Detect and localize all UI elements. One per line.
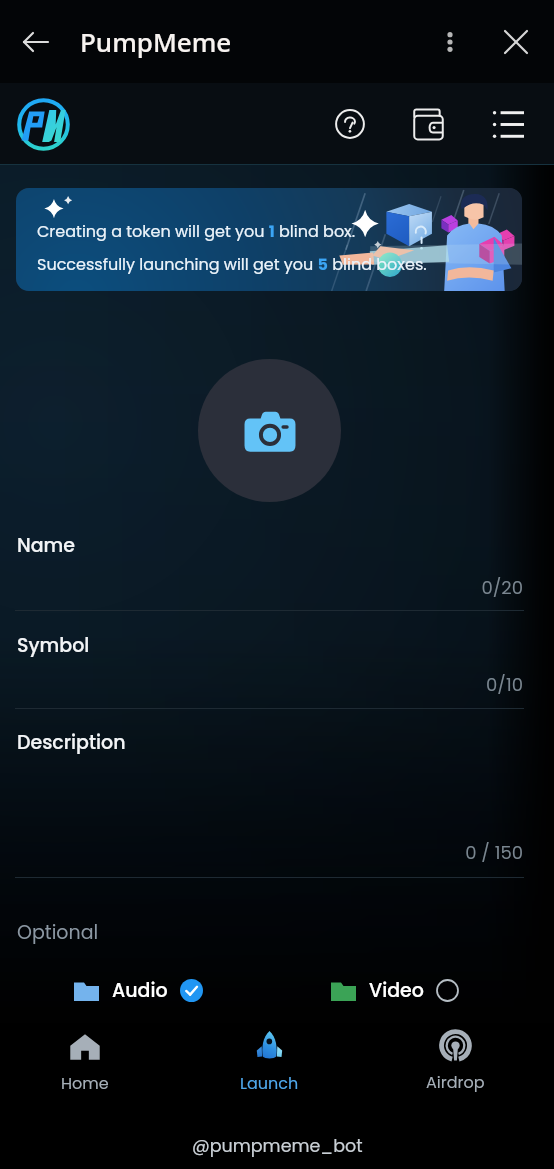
button[interactable]: Upload token image [198,359,341,502]
staticText: Successfully launching will get you 5 bl… [37,253,427,275]
button[interactable]: Audio [74,977,203,1004]
staticText: Creating a token will get you 1 blind bo… [37,220,356,242]
staticText: Symbol [17,632,90,659]
button[interactable]: Back [10,16,62,68]
staticText: Description [17,729,126,756]
staticText: 0/20 [0,575,523,600]
button[interactable]: Help [322,96,378,152]
staticText: Name [17,532,76,559]
button[interactable]: Menu [480,96,536,152]
button[interactable]: PumpMeme logo [15,96,71,152]
button[interactable]: Home [30,1024,140,1108]
staticText: 0/10 [0,672,523,697]
staticText: @pumpmeme_bot [192,1134,363,1159]
staticText: Optional [17,919,99,946]
staticText: PumpMeme [80,24,232,59]
button[interactable]: Wallet [400,96,456,152]
button[interactable]: More options [424,16,476,68]
button[interactable]: Launch [214,1024,324,1108]
staticText: Launch [240,1072,299,1094]
staticText: Video [369,977,424,1004]
button[interactable]: Close [490,16,542,68]
button[interactable]: Airdrop [400,1024,510,1108]
button[interactable]: Video [331,977,459,1004]
staticText: Audio [112,977,168,1004]
staticText: Airdrop [426,1071,485,1093]
staticText: 0 / 150 [0,840,523,865]
button[interactable]: Creating a token will get you 1 blind bo… [16,188,522,291]
staticText: Home [61,1072,109,1094]
